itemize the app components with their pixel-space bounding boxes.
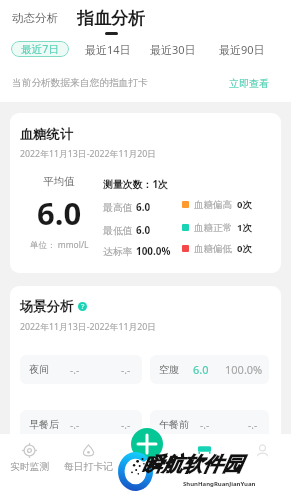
staticText: 动态分析 — [12, 11, 58, 25]
staticText: 6.0 — [136, 200, 151, 213]
staticText: 指血分析 — [77, 8, 145, 29]
staticText: 立即查看 — [229, 77, 269, 90]
button[interactable]: 最近14日 — [85, 42, 131, 57]
staticText: 场景分析 — [20, 298, 74, 315]
staticText: -.- — [70, 363, 80, 377]
staticText: 1次 — [237, 221, 252, 234]
staticText: 最近7日 — [21, 42, 59, 56]
staticText: 空腹 — [159, 363, 179, 376]
staticText: 100.0% — [225, 362, 263, 377]
staticText: 6.0 — [136, 223, 151, 236]
staticText: 每日打卡记 — [64, 461, 113, 473]
staticText: -.- — [70, 418, 80, 432]
button[interactable]: 导航3 — [175, 434, 233, 500]
button[interactable]: 立即查看 — [229, 77, 269, 90]
staticText: -.- — [121, 363, 131, 377]
staticText: 单位： mmol/L — [30, 239, 89, 251]
button[interactable]: 添加 — [131, 428, 163, 460]
staticText: ShunHangRuanJianYuan — [183, 480, 256, 488]
staticText: ? — [81, 302, 85, 311]
staticText: -.- — [200, 418, 210, 432]
staticText: 6.0 — [37, 192, 82, 234]
button[interactable]: 导航4 — [233, 434, 291, 500]
staticText: 午餐前 — [159, 418, 189, 431]
button[interactable]: 动态分析 — [12, 11, 58, 25]
button[interactable]: 指血分析 — [77, 8, 145, 35]
staticText: 当前分析数据来自您的指血打卡 — [12, 77, 148, 89]
staticText: -.- — [121, 418, 131, 432]
staticText: 最近14日 — [85, 42, 131, 57]
button[interactable]: 午餐前 — [150, 410, 269, 439]
button[interactable]: 早餐后 — [20, 410, 142, 439]
staticText: 实时监测 — [10, 461, 50, 473]
staticText: -.- — [248, 418, 258, 432]
staticText: 最近30日 — [150, 42, 196, 57]
staticText: 最近90日 — [219, 42, 265, 57]
staticText: 2022年11月13日-2022年11月20日 — [20, 321, 157, 333]
staticText: 血糖偏高 — [194, 199, 232, 211]
staticText: 早餐后 — [29, 418, 59, 431]
staticText: 最高值 — [103, 200, 136, 214]
button[interactable]: 最近7日 — [11, 41, 69, 57]
button[interactable]: 最近30日 — [150, 42, 196, 57]
staticText: 平均值 — [43, 175, 75, 188]
button[interactable]: 实时监测 — [0, 434, 59, 500]
button[interactable]: 最近90日 — [219, 42, 265, 57]
staticText: 100.0% — [136, 244, 171, 257]
staticText: 0次 — [237, 242, 252, 255]
staticText: 血糖偏低 — [194, 243, 232, 255]
staticText: 6.0 — [193, 362, 209, 377]
staticText: 0次 — [237, 198, 252, 211]
button[interactable]: 空腹 — [150, 355, 269, 384]
staticText: 血糖统计 — [20, 126, 74, 143]
staticText: 夜间 — [29, 363, 49, 376]
staticText: 血糖正常 — [194, 222, 232, 234]
staticText: 最低值 — [103, 223, 136, 237]
button[interactable]: 夜间 — [20, 355, 142, 384]
button[interactable]: 帮助 — [78, 302, 87, 311]
staticText: 达标率 — [103, 244, 136, 258]
staticText: 2022年11月13日-2022年11月20日 — [20, 148, 157, 160]
staticText: 测量次数：1次 — [103, 177, 169, 191]
staticText: 瞬航软件园 — [142, 452, 242, 477]
button[interactable]: 每日打卡记 — [59, 434, 117, 500]
button[interactable]: 导航2 — [117, 434, 175, 500]
